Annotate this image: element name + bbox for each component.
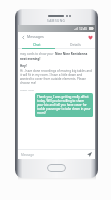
button[interactable]: Chat	[18, 41, 56, 48]
staticText: Message	[21, 153, 86, 157]
staticText: Messages	[27, 34, 44, 39]
staticText: SAMSUNG	[47, 19, 66, 23]
button[interactable]: Back	[20, 34, 26, 40]
staticText: Today 10:45	[20, 88, 34, 91]
button[interactable]: Send	[86, 151, 93, 158]
button[interactable]: Details	[56, 41, 95, 48]
staticText: 12:45	[79, 27, 88, 31]
staticText: Details	[70, 42, 81, 47]
button[interactable]: Thank you, I was getting really affect t…	[35, 93, 93, 117]
staticText: may cards to show your	[20, 52, 55, 56]
staticText: next evening!	[20, 57, 41, 61]
staticText: Thank you, I was getting really affect t…	[37, 95, 91, 115]
staticText: Nine Nine Rentdonna	[55, 52, 88, 56]
staticText: Chat	[33, 42, 41, 47]
staticText: Hey!	[20, 64, 27, 68]
button[interactable]: Home	[47, 164, 66, 172]
button[interactable]: Favorite	[87, 34, 93, 40]
staticText: Hi - have done recordings of moving big …	[20, 69, 93, 85]
